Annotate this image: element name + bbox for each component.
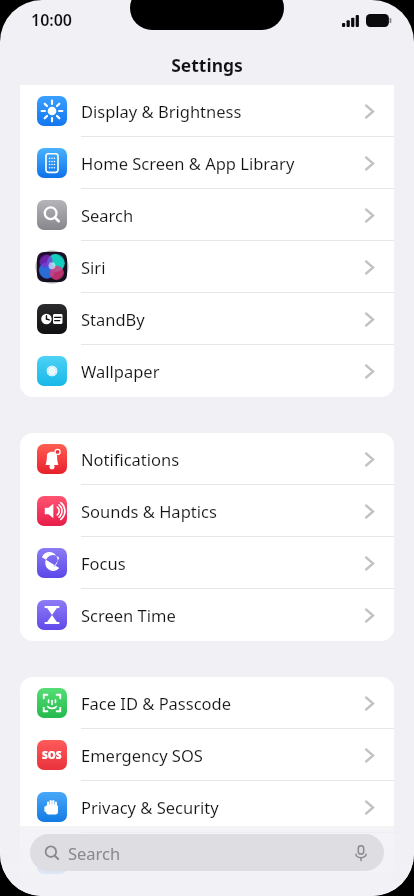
button[interactable]: Search bbox=[20, 189, 394, 241]
button[interactable]: Home Screen & App Library bbox=[20, 137, 394, 189]
button[interactable]: Wallpaper bbox=[20, 345, 394, 397]
staticText: Screen Time bbox=[81, 604, 365, 626]
button[interactable]: Notifications bbox=[20, 433, 394, 485]
other: Voice search bbox=[352, 844, 370, 862]
staticText: Search bbox=[81, 204, 365, 226]
button[interactable]: Search bbox=[30, 834, 384, 871]
staticText: Emergency SOS bbox=[81, 744, 365, 766]
staticText: 10:00 bbox=[31, 9, 73, 31]
button[interactable]: Face ID & Passcode bbox=[20, 677, 394, 729]
staticText: Search bbox=[68, 842, 352, 864]
staticText: Siri bbox=[81, 256, 365, 278]
staticText: Privacy & Security bbox=[81, 796, 365, 818]
button[interactable]: Screen Time bbox=[20, 589, 394, 641]
staticText: Settings bbox=[171, 53, 243, 77]
button[interactable]: Focus bbox=[20, 537, 394, 589]
staticText: Focus bbox=[81, 552, 365, 574]
staticText: Face ID & Passcode bbox=[81, 692, 365, 714]
button[interactable]: Privacy & Security bbox=[20, 781, 394, 833]
staticText: SOS bbox=[42, 748, 62, 762]
staticText: Notifications bbox=[81, 448, 365, 470]
button[interactable]: SOS bbox=[20, 729, 394, 781]
button[interactable]: App Store bbox=[20, 833, 394, 885]
button[interactable]: Display & Brightness bbox=[20, 85, 394, 137]
staticText: App Store bbox=[81, 848, 365, 870]
staticText: StandBy bbox=[81, 308, 365, 330]
staticText: Sounds & Haptics bbox=[81, 500, 365, 522]
staticText: Wallpaper bbox=[81, 360, 365, 382]
staticText: Home Screen & App Library bbox=[81, 152, 365, 174]
button[interactable]: StandBy bbox=[20, 293, 394, 345]
button[interactable]: Sounds & Haptics bbox=[20, 485, 394, 537]
staticText: Display & Brightness bbox=[81, 100, 365, 122]
button[interactable]: Siri bbox=[20, 241, 394, 293]
